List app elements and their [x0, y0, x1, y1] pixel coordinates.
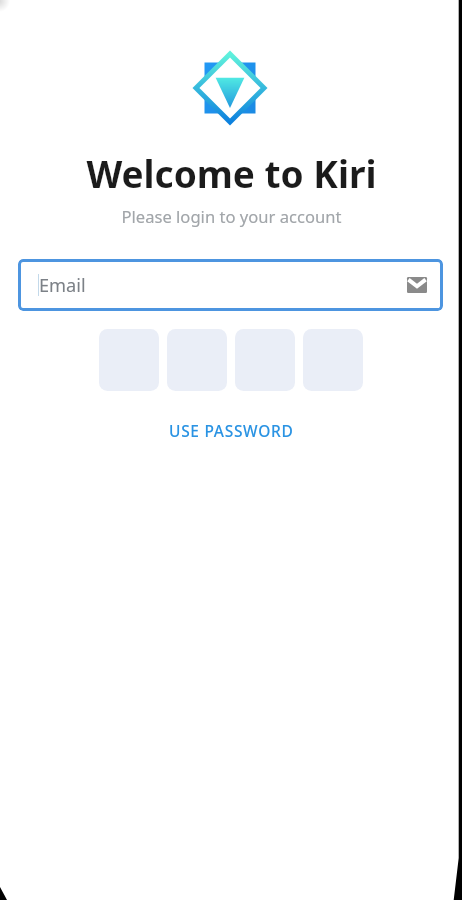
- staticText: USE PASSWORD: [169, 420, 294, 441]
- button[interactable]: Email: [18, 259, 443, 311]
- button[interactable]: USE PASSWORD: [161, 416, 302, 445]
- staticText: Email: [39, 273, 86, 298]
- staticText: Welcome to Kiri: [86, 148, 377, 198]
- other: Email: [407, 277, 427, 293]
- staticText: Please login to your account: [121, 205, 342, 228]
